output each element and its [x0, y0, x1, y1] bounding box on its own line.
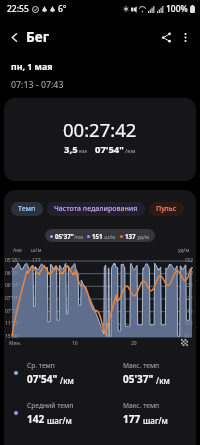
button[interactable]: 00:27:42 [4, 98, 196, 181]
staticText: /км [58, 375, 74, 386]
staticText: Темп [18, 204, 36, 214]
staticText: Макс. темп [123, 361, 160, 370]
button[interactable]: Back [0, 24, 56, 50]
staticText: 177 [32, 257, 41, 264]
staticText: 11'53" [5, 320, 20, 327]
staticText: 07'36" [5, 308, 20, 315]
staticText: Частота педалирования [54, 204, 138, 214]
staticText: 152 [184, 257, 193, 264]
staticText: 10 [72, 340, 78, 347]
staticText: /км [74, 233, 83, 240]
button[interactable]: Частота педалирования [47, 202, 145, 216]
staticText: 07:13 - 07:43 [11, 79, 64, 91]
staticText: Макс. темп [123, 401, 160, 410]
staticText: ш/м [31, 247, 42, 254]
staticText: шаг/м [141, 415, 168, 426]
button[interactable]: More options [176, 28, 194, 46]
staticText: Мин. [9, 340, 22, 347]
button[interactable]: Ср. темп [4, 353, 100, 393]
staticText: 07'54" [27, 372, 58, 386]
staticText: 91 [184, 333, 190, 340]
staticText: шаг/м [45, 415, 72, 426]
button[interactable]: Средний темп [4, 393, 100, 433]
staticText: /км [154, 375, 170, 386]
staticText: 05'25" [5, 257, 20, 264]
staticText: 177 [123, 412, 141, 426]
staticText: Пульс [156, 204, 177, 214]
staticText: 06'05" [5, 270, 20, 277]
staticText: 6° [58, 3, 67, 15]
staticText: 111 [184, 308, 193, 315]
other: Back [9, 32, 20, 43]
staticText: 101 [184, 320, 193, 327]
button[interactable]: Макс. темп [100, 353, 196, 393]
staticText: Бег [26, 28, 50, 46]
staticText: 05'37" [55, 232, 74, 240]
staticText: 00:27:42 [63, 117, 137, 142]
staticText: /км [13, 247, 22, 254]
staticText: Ср. темп [27, 361, 55, 370]
button[interactable]: Пульс [149, 202, 184, 216]
staticText: уд/м [178, 247, 190, 254]
staticText: 22:55 [7, 3, 29, 15]
staticText: 05'37" [123, 372, 154, 386]
staticText: пн, 1 мая [11, 61, 53, 73]
staticText: 137 [125, 232, 136, 240]
staticText: 06'34" [5, 282, 20, 289]
staticText: 100% [166, 3, 188, 15]
staticText: км [79, 147, 88, 155]
staticText: 20 [131, 340, 137, 347]
staticText: 121 [184, 295, 193, 302]
staticText: ш/м [103, 233, 116, 240]
staticText: уд/м [136, 233, 150, 240]
staticText: 151 [92, 232, 103, 240]
staticText: 142 [27, 412, 45, 426]
staticText: /км [125, 147, 136, 155]
staticText: 15'36" [5, 333, 20, 340]
button[interactable]: Темп [11, 202, 43, 216]
button[interactable]: Share [157, 28, 175, 46]
staticText: 131 [184, 282, 193, 289]
button[interactable]: Макс. темп [100, 393, 196, 433]
staticText: 142 [184, 270, 193, 277]
staticText: 3,5 [64, 143, 78, 156]
staticText: Средний темп [27, 401, 74, 410]
staticText: 07'03" [5, 295, 20, 302]
staticText: 07'54" [95, 143, 124, 156]
